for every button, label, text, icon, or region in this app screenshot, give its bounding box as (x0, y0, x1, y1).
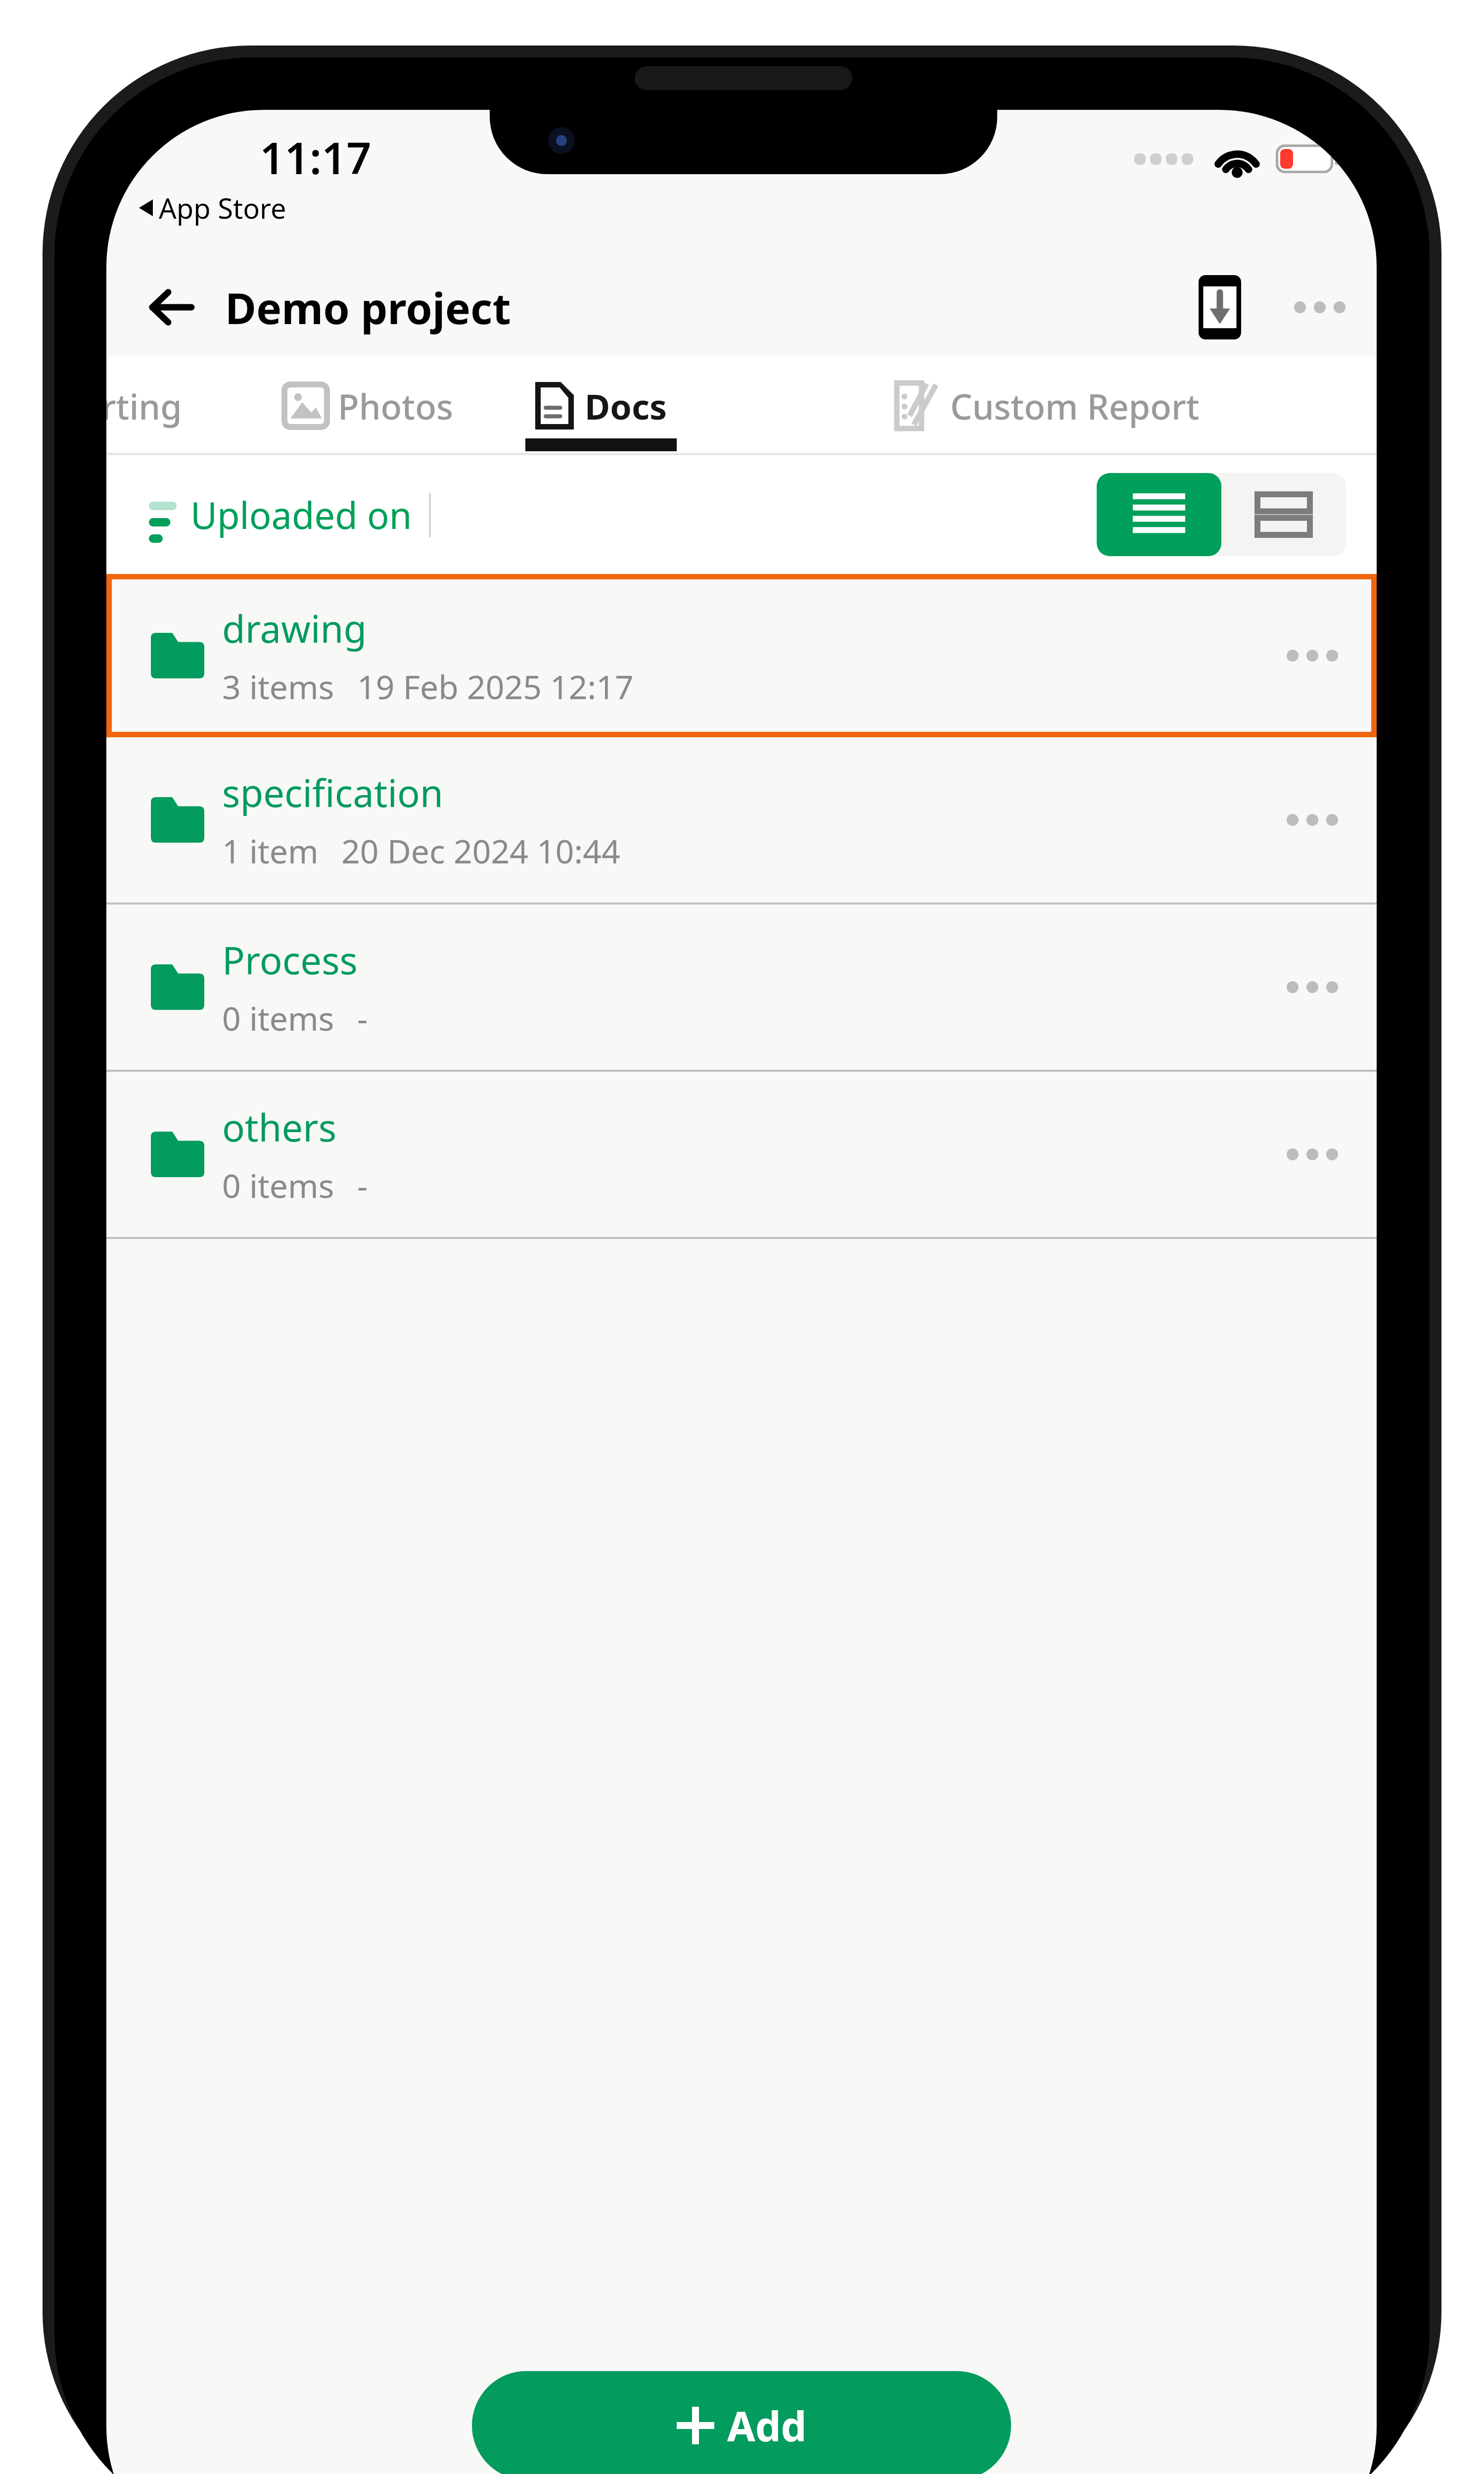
staticText: rting (106, 382, 182, 429)
staticText: drawing (222, 603, 367, 654)
button[interactable]: Docs (482, 356, 720, 455)
staticText: 1 item (222, 828, 319, 873)
button[interactable]: Download (1183, 270, 1257, 344)
button[interactable]: specification (106, 737, 1377, 903)
button[interactable]: Folder options (1278, 785, 1347, 855)
staticText: 11:17 (260, 128, 371, 187)
button[interactable]: List view (1097, 473, 1221, 556)
button[interactable]: Photos (255, 356, 482, 455)
staticText: specification (222, 767, 443, 818)
staticText: 20 Dec 2024 10:44 (341, 828, 620, 873)
button[interactable]: Folder options (1278, 621, 1347, 690)
staticText: Photos (338, 382, 453, 429)
button[interactable]: More options (1283, 270, 1357, 344)
button[interactable]: Back (131, 268, 210, 347)
staticText: Custom Report (950, 382, 1200, 429)
staticText: - (357, 996, 368, 1040)
staticText: 3 items (222, 664, 334, 709)
button[interactable]: Add (472, 2371, 1011, 2474)
button[interactable]: Card view (1221, 473, 1346, 556)
button[interactable]: Custom Report (720, 356, 1377, 455)
button[interactable]: Folder options (1278, 952, 1347, 1022)
button[interactable]: Uploaded on (136, 481, 438, 549)
staticText: - (357, 1163, 368, 1207)
button[interactable]: others (106, 1072, 1377, 1237)
staticText: 19 Feb 2025 12:17 (357, 664, 634, 709)
staticText: 0 items (222, 1163, 334, 1207)
button[interactable]: App Store (137, 187, 288, 229)
staticText: Uploaded on (190, 490, 412, 540)
button[interactable]: drawing (106, 574, 1377, 737)
staticText: Docs (585, 382, 667, 429)
button[interactable]: Folder options (1278, 1120, 1347, 1189)
staticText: Demo project (225, 279, 511, 336)
staticText: Add (727, 2398, 807, 2453)
button[interactable]: rting (106, 356, 255, 455)
staticText: Process (222, 934, 358, 986)
staticText: 0 items (222, 996, 334, 1040)
button[interactable]: Process (106, 904, 1377, 1070)
staticText: App Store (159, 189, 286, 227)
staticText: others (222, 1101, 337, 1153)
